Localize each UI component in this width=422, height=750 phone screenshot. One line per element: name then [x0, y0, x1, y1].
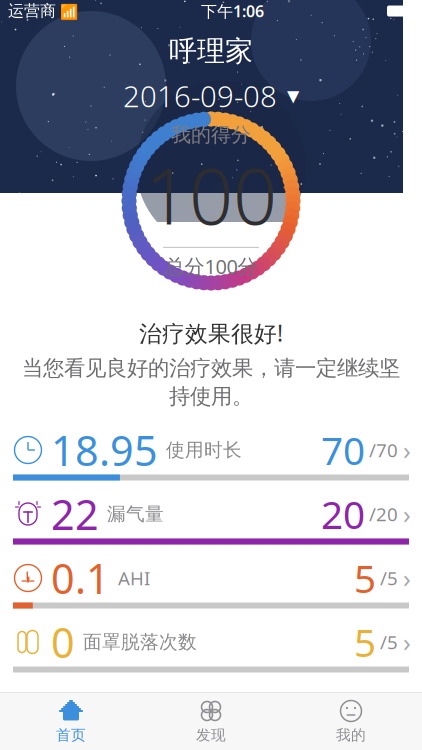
staticText: ▼	[287, 87, 299, 105]
button[interactable]: 我的	[281, 697, 421, 746]
button[interactable]: 0.1	[0, 555, 422, 619]
staticText: ›	[403, 497, 411, 531]
staticText: 2016-09-08	[123, 76, 277, 115]
staticText: ›	[403, 433, 411, 467]
staticText: 下午1:06	[201, 0, 264, 22]
button[interactable]: 发现	[141, 697, 281, 746]
staticText: /20	[369, 502, 398, 526]
staticText: 100	[145, 143, 277, 246]
staticText: 总分100分	[164, 253, 257, 279]
staticText: 📶	[56, 1, 78, 21]
staticText: ›	[403, 625, 411, 659]
staticText: 0.1	[51, 551, 110, 605]
staticText: /5	[380, 566, 398, 590]
button[interactable]: 22	[0, 491, 422, 555]
staticText: 呼理家	[169, 34, 253, 68]
staticText: AHI	[118, 566, 150, 590]
staticText: 治疗效果很好!	[139, 318, 283, 348]
staticText: 70	[321, 424, 365, 476]
staticText: 首页	[56, 726, 86, 744]
button[interactable]: 2016-09-08	[113, 72, 309, 119]
staticText: 运营商	[8, 1, 56, 21]
staticText: 我的	[336, 726, 366, 744]
staticText: 5	[354, 552, 376, 604]
staticText: 使用时长	[166, 438, 242, 461]
staticText: 5	[354, 616, 376, 668]
staticText: 持使用。	[169, 383, 253, 409]
staticText: 22	[51, 487, 99, 541]
button[interactable]: 18.95	[0, 427, 422, 491]
staticText: /70	[369, 438, 398, 462]
button[interactable]: 首页	[1, 697, 141, 746]
staticText: 当您看见良好的治疗效果，请一定继续坚	[22, 355, 400, 381]
staticText: 发现	[196, 726, 226, 744]
staticText: 20	[321, 488, 365, 540]
staticText: 我的得分	[171, 123, 251, 147]
button[interactable]: 0	[0, 619, 422, 683]
staticText: /5	[380, 630, 398, 654]
staticText: 漏气量	[107, 502, 164, 525]
staticText: 0	[51, 615, 75, 669]
staticText: 18.95	[51, 423, 158, 477]
staticText: 面罩脱落次数	[83, 630, 197, 653]
staticText: ›	[403, 561, 411, 595]
